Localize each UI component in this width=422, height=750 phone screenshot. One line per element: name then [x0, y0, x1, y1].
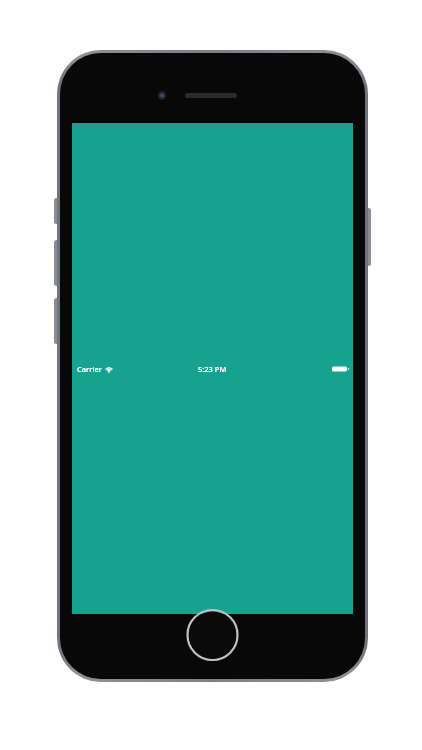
staticText: 5:23 PM [198, 364, 227, 374]
staticText: Carrier [77, 364, 102, 374]
